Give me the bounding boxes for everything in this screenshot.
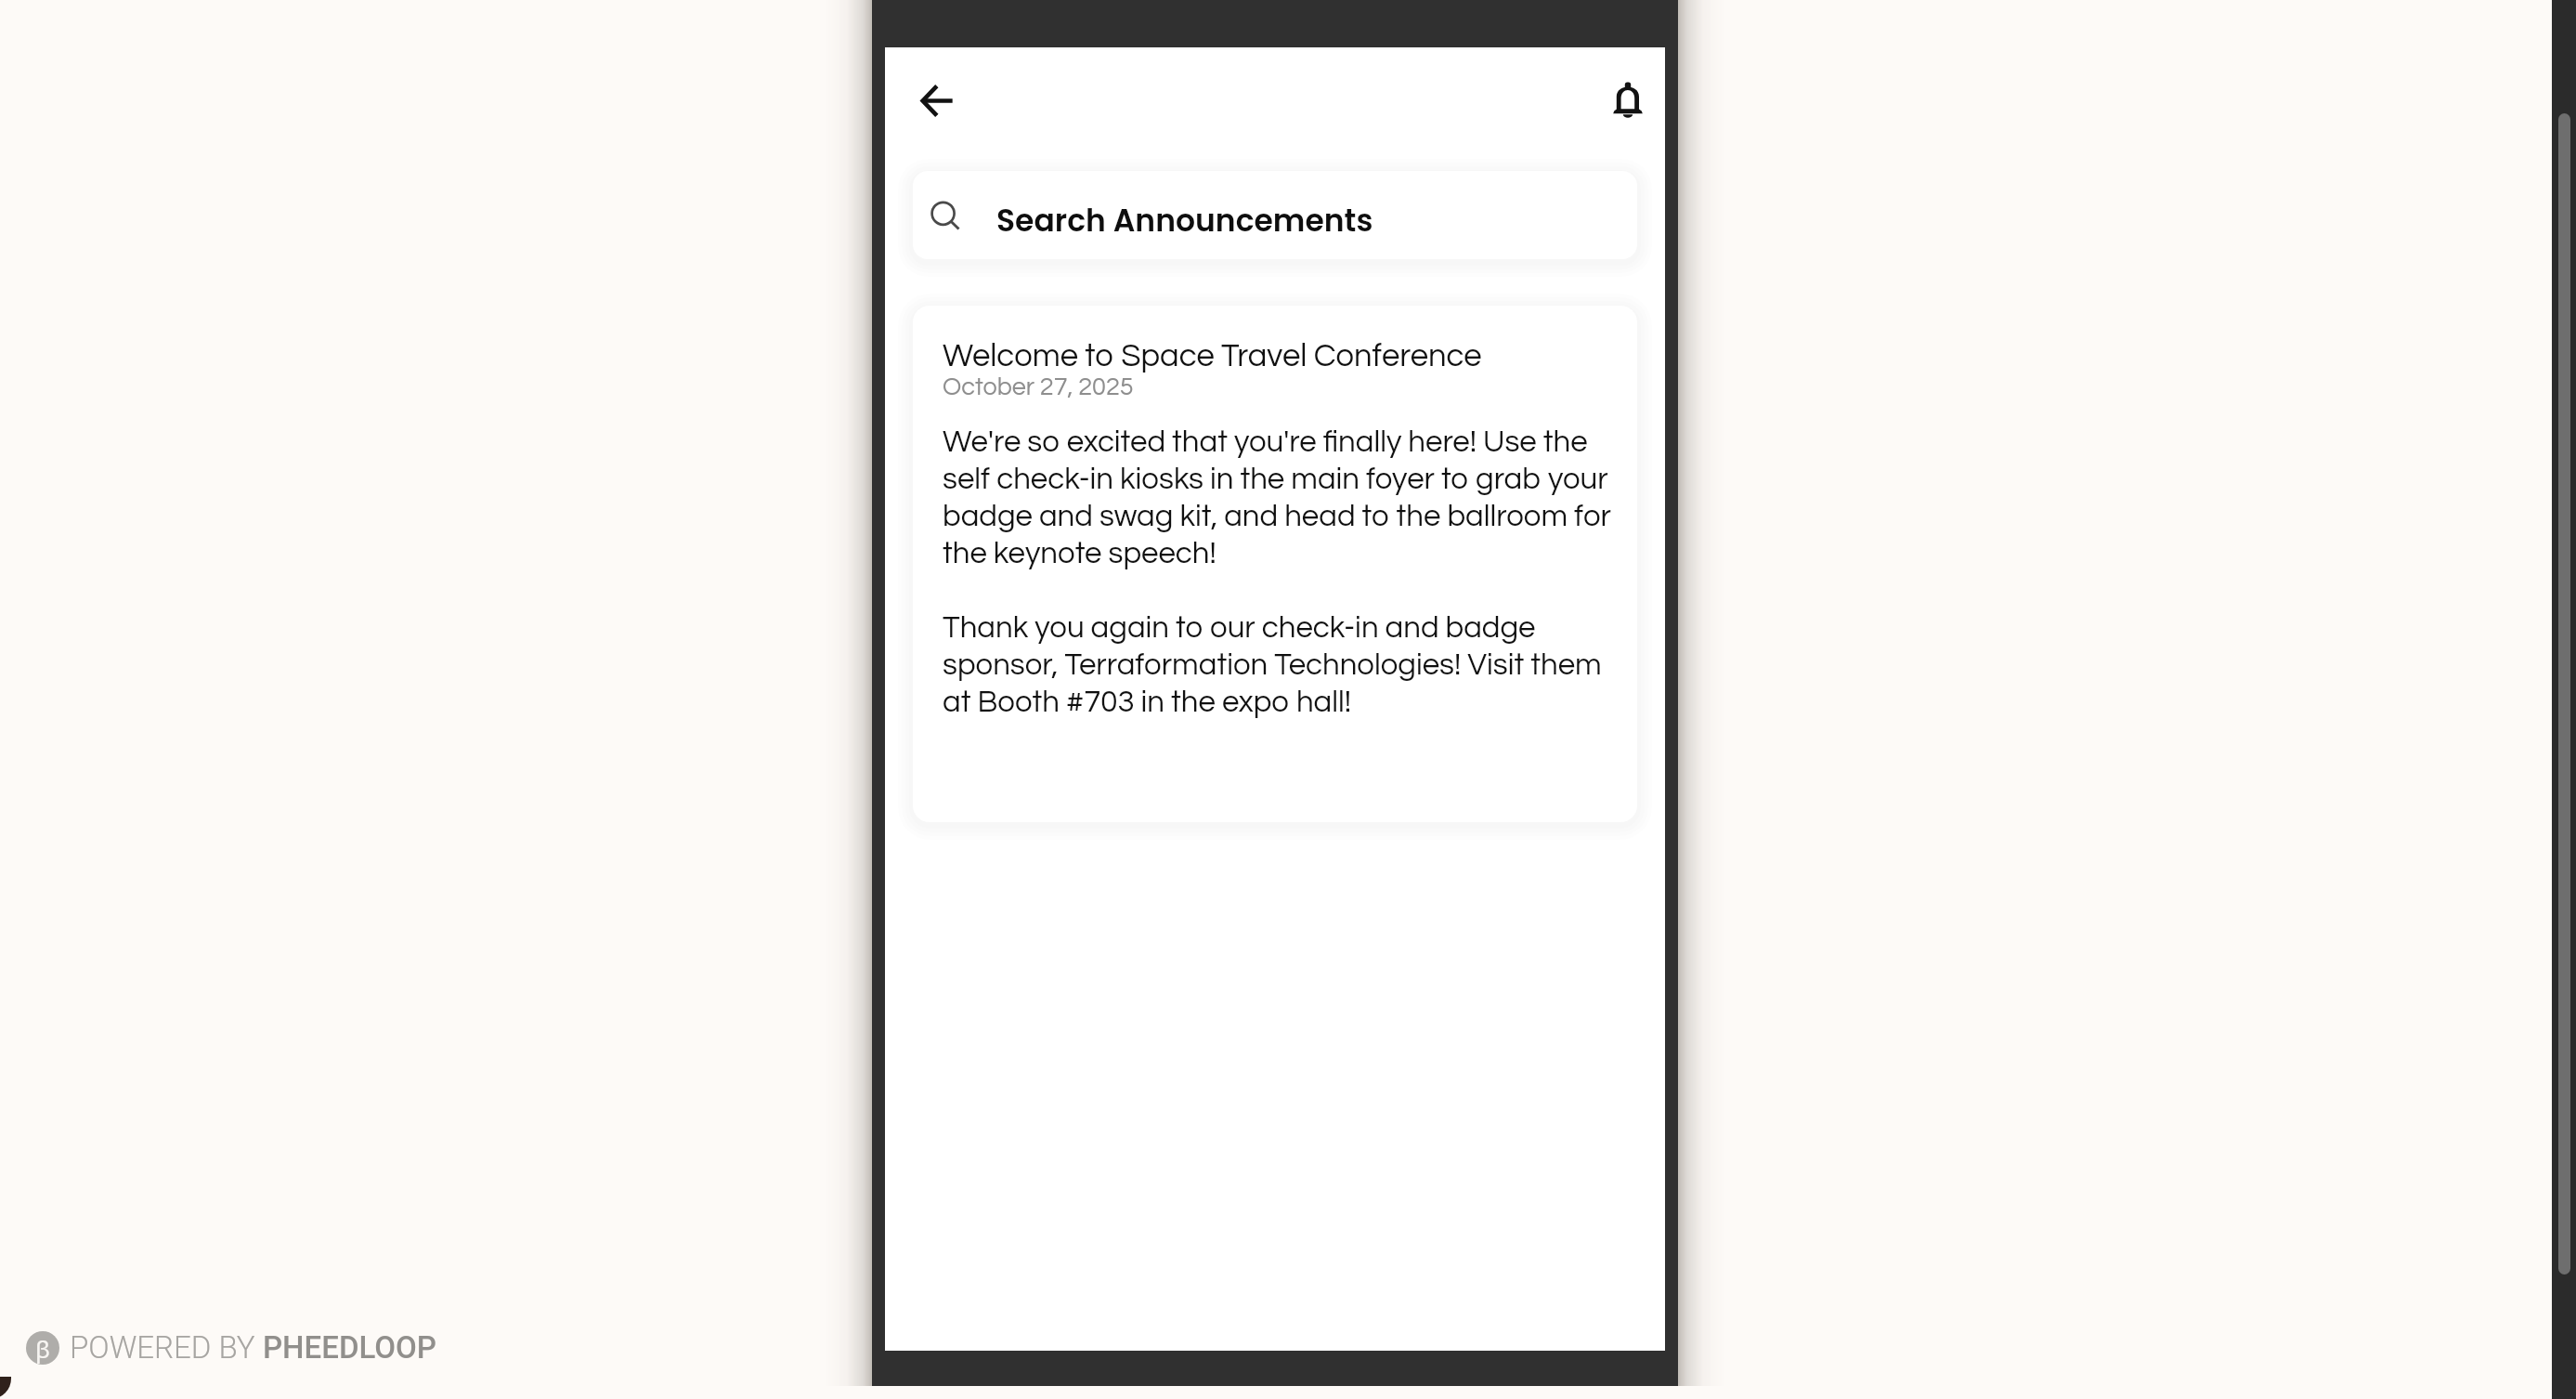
staticText: We're so excited that you're finally her… — [943, 426, 1626, 718]
button[interactable]: Back — [907, 71, 967, 130]
staticText: October 27, 2025 — [943, 374, 1134, 400]
button[interactable]: Notifications — [1598, 71, 1658, 130]
staticText: Search Announcements — [996, 199, 1373, 242]
button[interactable]: Welcome to Space Travel Conference — [913, 306, 1637, 822]
staticText: PHEEDLOOP — [263, 1329, 436, 1366]
button[interactable]: Search Announcements — [913, 171, 1637, 259]
staticText: Welcome to Space Travel Conference — [943, 340, 1482, 373]
staticText: β — [35, 1332, 50, 1365]
staticText: POWERED BY — [70, 1329, 263, 1366]
